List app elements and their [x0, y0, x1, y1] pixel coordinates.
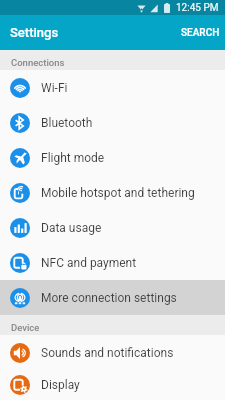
staticText: Sounds and notifications: [41, 346, 174, 360]
staticText: Settings: [10, 25, 59, 40]
button[interactable]: Sounds and notifications: [0, 335, 225, 370]
button[interactable]: Mobile hotspot and tethering: [0, 175, 225, 210]
staticText: Flight mode: [41, 151, 105, 165]
staticText: Display: [41, 378, 80, 392]
button[interactable]: SEARCH: [174, 15, 225, 50]
staticText: More connection settings: [41, 291, 177, 305]
button[interactable]: Flight mode: [0, 140, 225, 175]
staticText: Data usage: [41, 221, 102, 235]
button[interactable]: Wi-Fi: [0, 70, 225, 105]
staticText: 12:45 PM: [176, 2, 219, 14]
staticText: Connections: [11, 57, 65, 68]
staticText: Bluetooth: [41, 116, 93, 130]
button[interactable]: Data usage: [0, 210, 225, 245]
button[interactable]: Display: [0, 370, 225, 400]
button[interactable]: NFC and payment: [0, 245, 225, 280]
staticText: NFC and payment: [41, 256, 137, 270]
button[interactable]: More connection settings: [0, 280, 225, 315]
staticText: Wi-Fi: [41, 81, 68, 95]
staticText: SEARCH: [181, 27, 220, 39]
staticText: Device: [11, 322, 40, 333]
staticText: Mobile hotspot and tethering: [41, 186, 195, 200]
button[interactable]: Bluetooth: [0, 105, 225, 140]
